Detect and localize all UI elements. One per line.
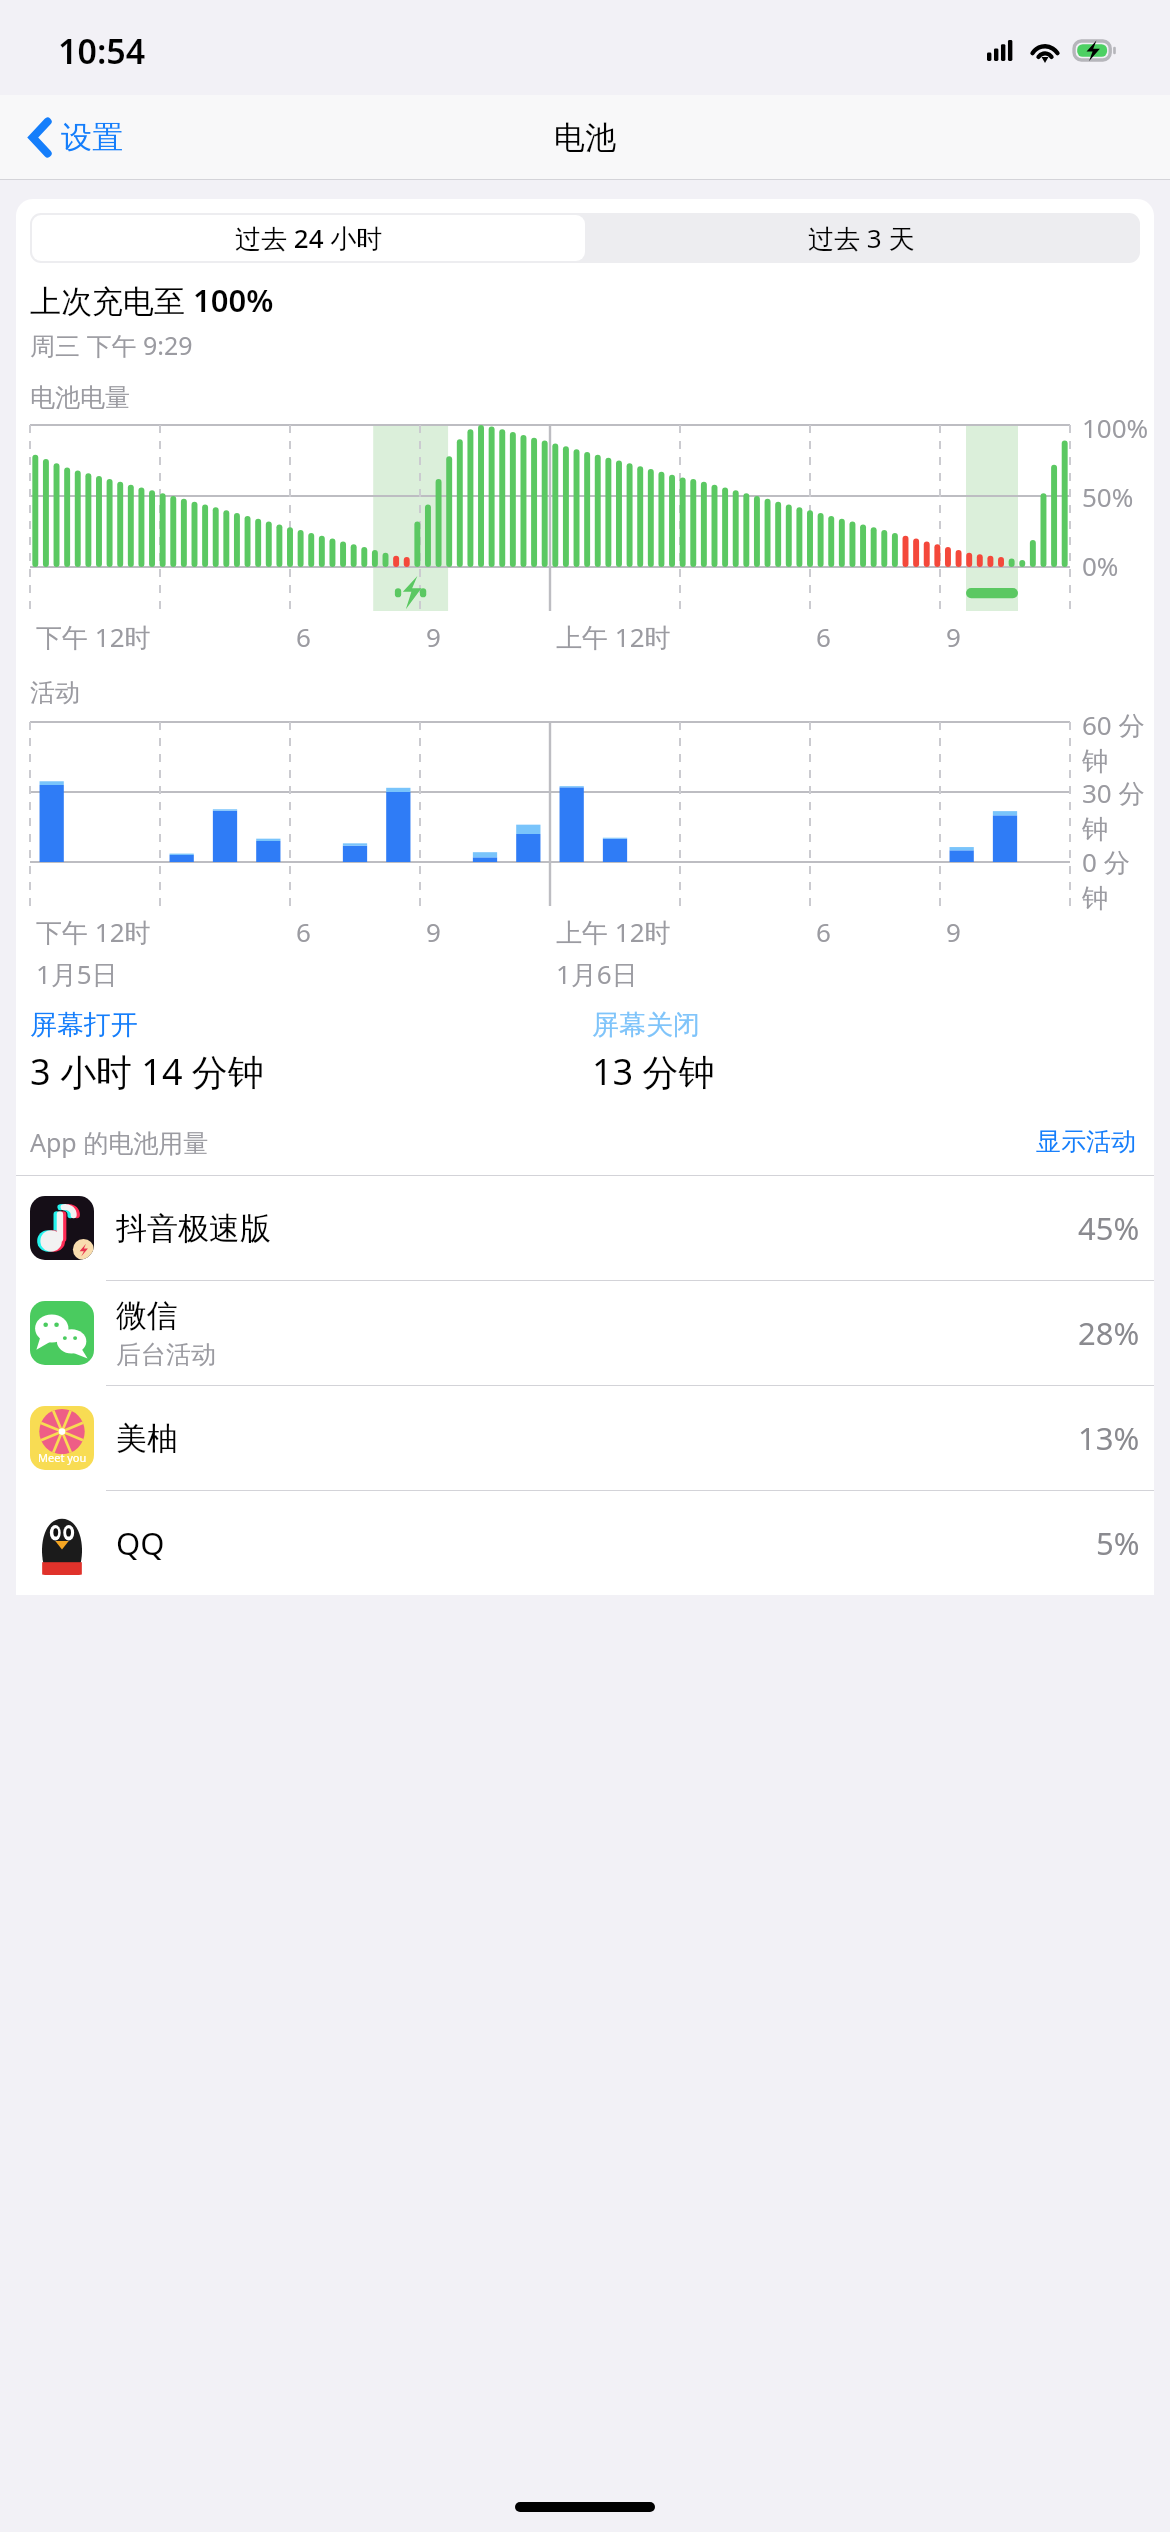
staticText: 9 bbox=[946, 619, 961, 654]
staticText: 100% bbox=[1082, 410, 1149, 445]
staticText: 过去 24 小时 bbox=[235, 220, 383, 256]
staticText: 下午 12时 bbox=[36, 619, 151, 655]
other: 美柚 bbox=[30, 1406, 94, 1470]
staticText: 上午 12时 bbox=[556, 914, 671, 950]
staticText: 13% bbox=[1078, 1417, 1140, 1459]
staticText: QQ bbox=[116, 1522, 165, 1564]
staticText: 9 bbox=[946, 914, 961, 949]
staticText: 1月6日 bbox=[556, 956, 638, 992]
button[interactable]: 设置 bbox=[22, 110, 131, 165]
staticText: 28% bbox=[1078, 1312, 1140, 1354]
staticText: 6 bbox=[296, 619, 311, 654]
staticText: 10:54 bbox=[58, 28, 146, 74]
staticText: 设置 bbox=[61, 118, 123, 157]
staticText: 周三 下午 9:29 bbox=[30, 328, 193, 362]
staticText: 屏幕关闭 bbox=[592, 1008, 700, 1042]
staticText: 50% bbox=[1082, 479, 1134, 514]
button[interactable]: QQ bbox=[16, 1491, 1154, 1595]
staticText: 6 bbox=[296, 914, 311, 949]
staticText: 美柚 bbox=[116, 1419, 178, 1458]
staticText: 抖音极速版 bbox=[116, 1209, 271, 1248]
staticText: 电池 bbox=[554, 118, 616, 157]
staticText: 显示活动 bbox=[1036, 1126, 1136, 1157]
staticText: 0% bbox=[1082, 548, 1119, 583]
other: 微信 bbox=[30, 1301, 94, 1365]
button[interactable]: 微信 bbox=[16, 1281, 1154, 1385]
staticText: 13 分钟 bbox=[592, 1047, 715, 1096]
button[interactable]: 美柚 bbox=[16, 1386, 1154, 1490]
button[interactable]: 显示活动 bbox=[1032, 1122, 1140, 1161]
button[interactable]: 抖音极速版 bbox=[16, 1176, 1154, 1280]
staticText: 6 bbox=[816, 619, 831, 654]
button[interactable]: 过去 3 天 bbox=[585, 215, 1138, 261]
staticText: 45% bbox=[1078, 1207, 1140, 1249]
staticText: 后台活动 bbox=[116, 1339, 216, 1370]
staticText: 6 bbox=[816, 914, 831, 949]
staticText: 上次充电至 100% bbox=[30, 279, 274, 321]
staticText: 上午 12时 bbox=[556, 619, 671, 655]
staticText: 1月5日 bbox=[36, 956, 118, 992]
staticText: 过去 3 天 bbox=[808, 220, 915, 256]
staticText: 5% bbox=[1096, 1522, 1140, 1564]
other: QQ bbox=[30, 1511, 94, 1575]
staticText: 0 分钟 bbox=[1082, 844, 1154, 915]
staticText: 60 分钟 bbox=[1082, 707, 1154, 778]
staticText: 9 bbox=[426, 914, 441, 949]
button[interactable]: 过去 24 小时 bbox=[32, 215, 585, 261]
staticText: 活动 bbox=[30, 677, 80, 708]
staticText: 电池电量 bbox=[30, 382, 130, 413]
staticText: 下午 12时 bbox=[36, 914, 151, 950]
staticText: Meet you bbox=[38, 1450, 87, 1465]
other: 抖音极速版 bbox=[30, 1196, 94, 1260]
staticText: 3 小时 14 分钟 bbox=[30, 1047, 264, 1096]
staticText: 9 bbox=[426, 619, 441, 654]
staticText: 30 分钟 bbox=[1082, 775, 1154, 846]
staticText: 微信 bbox=[116, 1296, 178, 1335]
staticText: 屏幕打开 bbox=[30, 1008, 138, 1042]
staticText: App 的电池用量 bbox=[30, 1125, 209, 1159]
